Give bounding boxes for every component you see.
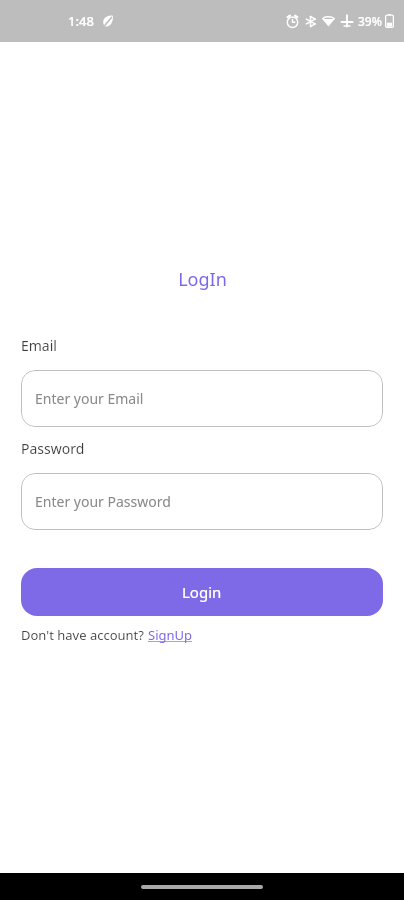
staticText: Enter your Password <box>35 492 171 511</box>
staticText: 39% <box>358 13 382 29</box>
staticText: LogIn <box>178 267 227 292</box>
button[interactable]: Enter your Email <box>21 370 383 427</box>
staticText: Login <box>182 582 222 602</box>
button[interactable]: Don't have account? <box>21 626 193 644</box>
staticText: SignUp <box>148 626 193 644</box>
staticText: Don't have account? <box>21 626 148 644</box>
staticText: Enter your Email <box>35 389 144 408</box>
button[interactable]: Login <box>21 568 383 616</box>
staticText: 1:48 <box>68 12 94 30</box>
button[interactable]: Enter your Password <box>21 473 383 530</box>
staticText: Email <box>21 336 57 355</box>
staticText: Password <box>21 439 85 458</box>
